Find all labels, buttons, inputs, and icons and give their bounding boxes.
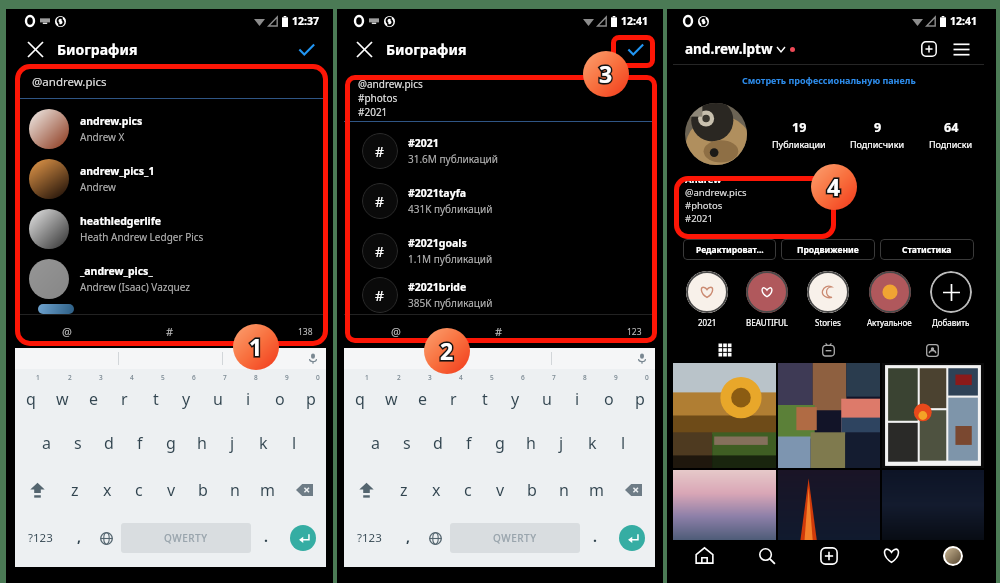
button[interactable] xyxy=(882,470,984,540)
button[interactable]: QWERTY xyxy=(450,523,580,553)
button[interactable] xyxy=(807,271,849,313)
button[interactable]: QWERTY xyxy=(121,523,251,553)
button[interactable]: Change language xyxy=(421,514,450,562)
button[interactable]: 9 xyxy=(264,372,295,419)
button[interactable]: h xyxy=(515,419,546,466)
button[interactable]: , xyxy=(394,514,421,562)
button[interactable]: z xyxy=(59,466,91,514)
button[interactable]: a xyxy=(31,419,62,466)
button[interactable]: 2 xyxy=(376,372,407,419)
button[interactable]: s xyxy=(391,419,422,466)
button[interactable]: Close xyxy=(344,33,384,65)
button[interactable]: k xyxy=(248,419,279,466)
button[interactable] xyxy=(685,103,747,165)
button[interactable]: heathledgerlife xyxy=(15,204,326,254)
button[interactable]: Enter xyxy=(290,525,316,551)
button[interactable]: ?123 xyxy=(15,514,65,562)
button[interactable]: Статистика xyxy=(880,239,974,260)
button[interactable]: 5 xyxy=(140,372,171,419)
button[interactable]: 5 xyxy=(469,372,500,419)
button[interactable]: ?123 xyxy=(344,514,394,562)
button[interactable]: Voice input xyxy=(223,348,326,369)
button[interactable]: 19 xyxy=(772,119,826,150)
button[interactable] xyxy=(673,363,776,468)
button[interactable]: andrew.pics xyxy=(15,104,326,154)
button[interactable]: Backspace xyxy=(612,466,655,514)
button[interactable]: 3 xyxy=(78,372,109,419)
button[interactable] xyxy=(869,271,911,313)
button[interactable]: l xyxy=(608,419,639,466)
button[interactable]: @ xyxy=(15,315,118,348)
button[interactable]: 4 xyxy=(109,372,140,419)
button[interactable]: Done xyxy=(615,33,655,65)
button[interactable] xyxy=(746,271,788,313)
button[interactable]: # xyxy=(447,315,551,348)
button[interactable]: 7 xyxy=(202,372,233,419)
button[interactable]: c xyxy=(452,466,484,514)
button[interactable]: 8 xyxy=(233,372,264,419)
button[interactable] xyxy=(673,470,776,540)
button[interactable]: Tagged xyxy=(880,337,984,363)
button[interactable]: Close xyxy=(15,33,55,65)
button[interactable]: a xyxy=(360,419,391,466)
button[interactable]: Change language xyxy=(92,514,121,562)
button[interactable]: andrew_pics_1 xyxy=(15,154,326,204)
button[interactable]: Add highlight xyxy=(930,271,972,313)
button[interactable]: v xyxy=(484,466,516,514)
button[interactable]: . xyxy=(580,514,609,562)
button[interactable] xyxy=(344,348,447,369)
button[interactable]: b xyxy=(187,466,219,514)
button[interactable]: Редактироват... xyxy=(683,239,776,260)
button[interactable]: # xyxy=(344,276,655,314)
button[interactable]: Продвижение xyxy=(781,239,875,260)
button[interactable]: b xyxy=(516,466,548,514)
button[interactable]: Смотреть профессиональную панель xyxy=(673,65,984,95)
button[interactable]: 3 xyxy=(407,372,438,419)
button[interactable] xyxy=(882,363,984,468)
button[interactable]: 7 xyxy=(531,372,562,419)
button[interactable]: j xyxy=(546,419,577,466)
button[interactable]: d xyxy=(93,419,124,466)
button[interactable]: 4 xyxy=(438,372,469,419)
button[interactable]: 64 xyxy=(929,119,973,150)
button[interactable]: z xyxy=(388,466,420,514)
button[interactable]: Add xyxy=(798,540,860,571)
button[interactable]: l xyxy=(279,419,310,466)
button[interactable]: c xyxy=(123,466,155,514)
button[interactable]: Menu xyxy=(948,36,974,62)
button[interactable]: h xyxy=(186,419,217,466)
button[interactable]: 1 xyxy=(15,372,47,419)
button[interactable]: 6 xyxy=(171,372,202,419)
button[interactable]: 0 xyxy=(295,372,326,419)
button[interactable]: 9 xyxy=(850,119,905,150)
button[interactable]: 8 xyxy=(562,372,593,419)
button[interactable]: @ xyxy=(344,315,447,348)
button[interactable] xyxy=(778,363,880,468)
button[interactable]: Enter xyxy=(619,525,645,551)
button[interactable]: f xyxy=(124,419,155,466)
button[interactable]: Reels xyxy=(776,337,880,363)
button[interactable]: x xyxy=(420,466,452,514)
button[interactable]: Voice input xyxy=(552,348,655,369)
button[interactable]: 2 xyxy=(47,372,78,419)
button[interactable]: Grid xyxy=(673,337,776,363)
button[interactable]: Profile xyxy=(922,540,984,571)
button[interactable]: _andrew_pics_ xyxy=(15,254,326,304)
button[interactable]: . xyxy=(251,514,280,562)
button[interactable]: 6 xyxy=(500,372,531,419)
button[interactable]: g xyxy=(484,419,515,466)
button[interactable]: Done xyxy=(286,33,326,65)
button[interactable]: New post xyxy=(916,36,942,62)
button[interactable]: 1 xyxy=(344,372,376,419)
button[interactable]: # xyxy=(344,126,655,176)
button[interactable]: 0 xyxy=(624,372,655,419)
button[interactable]: n xyxy=(219,466,251,514)
button[interactable]: g xyxy=(155,419,186,466)
button[interactable]: x xyxy=(91,466,123,514)
button[interactable]: f xyxy=(453,419,484,466)
button[interactable]: d xyxy=(422,419,453,466)
button[interactable]: k xyxy=(577,419,608,466)
button[interactable]: s xyxy=(62,419,93,466)
